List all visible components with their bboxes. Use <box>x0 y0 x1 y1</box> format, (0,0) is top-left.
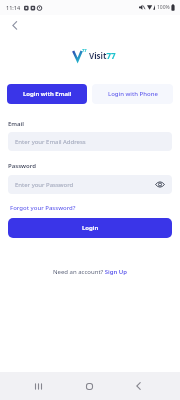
button[interactable]: Login with Phone <box>92 84 173 104</box>
staticText: Login with Email <box>23 90 72 98</box>
button[interactable] <box>28 372 48 400</box>
staticText: Visit77 <box>89 50 116 61</box>
button[interactable]: Login with Email <box>7 84 87 104</box>
staticText: Email <box>8 120 25 128</box>
staticText: 11:14 <box>6 4 21 11</box>
button[interactable]: Forgot your Password? <box>10 204 76 212</box>
button[interactable]: Login <box>8 218 172 238</box>
button[interactable] <box>79 372 99 400</box>
button[interactable] <box>128 372 148 400</box>
staticText: Enter your Password <box>15 181 74 189</box>
button[interactable]: Enter your Email Address <box>8 132 172 151</box>
button[interactable]: Enter your Password <box>8 175 172 194</box>
button[interactable] <box>8 18 22 32</box>
staticText: Enter your Email Address <box>15 138 86 146</box>
staticText: Password <box>8 162 37 170</box>
staticText: Login <box>82 224 99 232</box>
button[interactable]: Need an account? Sign Up <box>53 268 128 276</box>
staticText: 100% <box>157 4 170 11</box>
staticText: Login with Phone <box>108 90 158 98</box>
staticText: 77 <box>82 48 87 53</box>
